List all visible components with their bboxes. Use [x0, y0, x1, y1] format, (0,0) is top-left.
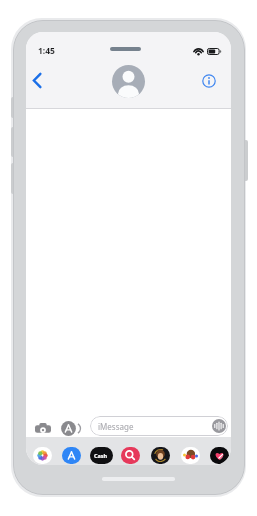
- button[interactable]: [210, 447, 229, 464]
- button[interactable]: [121, 447, 140, 464]
- button[interactable]: [181, 447, 200, 464]
- button[interactable]: [33, 447, 52, 464]
- staticText: iMessage: [98, 421, 134, 432]
- staticText: Cash: [94, 452, 108, 459]
- button[interactable]: [112, 65, 145, 98]
- button[interactable]: [151, 447, 170, 464]
- staticText: 1:45: [38, 45, 55, 57]
- button[interactable]: [30, 418, 55, 440]
- button[interactable]: [200, 72, 219, 91]
- button[interactable]: [28, 68, 48, 94]
- button[interactable]: Cash: [90, 447, 113, 464]
- button[interactable]: [62, 447, 81, 464]
- button[interactable]: iMessage: [90, 416, 228, 436]
- button[interactable]: [59, 419, 80, 438]
